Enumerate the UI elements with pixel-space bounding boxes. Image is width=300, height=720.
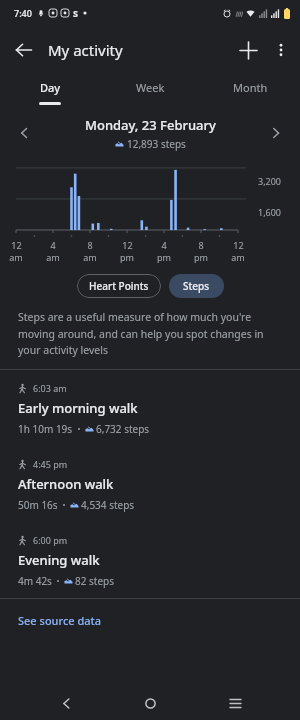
- button[interactable]: 6:03 am: [0, 370, 300, 446]
- staticText: am: [9, 251, 23, 263]
- staticText: Day: [40, 80, 61, 95]
- staticText: Week: [136, 80, 165, 95]
- button[interactable]: Previous day: [8, 117, 40, 149]
- button[interactable]: Steps: [169, 274, 224, 298]
- staticText: Month: [233, 80, 268, 95]
- staticText: 82 steps: [75, 574, 115, 588]
- staticText: 50m 16s: [18, 498, 58, 512]
- staticText: See source data: [18, 613, 102, 628]
- staticText: 12: [122, 239, 133, 251]
- staticText: 12,893 steps: [127, 137, 186, 151]
- staticText: Heart Points: [89, 279, 149, 293]
- staticText: 1,600: [258, 206, 282, 218]
- staticText: pm: [120, 251, 134, 263]
- button[interactable]: Day: [0, 74, 100, 110]
- button[interactable]: 6:00 pm: [0, 522, 300, 598]
- staticText: am: [231, 251, 245, 263]
- staticText: am: [83, 251, 97, 263]
- staticText: 8: [87, 239, 93, 251]
- staticText: 4m 42s: [18, 574, 52, 588]
- staticText: 4:45 pm: [33, 458, 68, 470]
- staticText: Steps are a useful measure of how much y…: [18, 310, 282, 357]
- staticText: Steps: [183, 279, 210, 293]
- staticText: 3,200: [258, 175, 282, 187]
- staticText: Evening walk: [18, 551, 100, 569]
- staticText: 4: [50, 239, 56, 251]
- staticText: 7:40: [14, 7, 32, 19]
- staticText: 6:00 pm: [33, 534, 68, 546]
- staticText: 4: [161, 239, 167, 251]
- staticText: Monday, 23 February: [85, 116, 216, 134]
- button[interactable]: 4:45 pm: [0, 446, 300, 522]
- staticText: 12: [11, 239, 22, 251]
- staticText: 1h 10m 19s: [18, 422, 73, 436]
- button[interactable]: Week: [100, 74, 200, 110]
- button[interactable]: Back: [6, 32, 42, 68]
- staticText: S: [73, 7, 78, 19]
- button[interactable]: More options: [266, 35, 296, 65]
- staticText: Early morning walk: [18, 399, 138, 417]
- button[interactable]: Month: [200, 74, 300, 110]
- staticText: 4,534 steps: [81, 498, 135, 512]
- button[interactable]: See source data: [0, 599, 300, 642]
- staticText: 6,732 steps: [96, 422, 150, 436]
- staticText: 8: [198, 239, 204, 251]
- button[interactable]: Heart Points: [77, 274, 161, 298]
- staticText: am: [46, 251, 60, 263]
- staticText: Afternoon walk: [18, 475, 114, 493]
- staticText: pm: [157, 251, 171, 263]
- staticText: 12: [233, 239, 244, 251]
- button[interactable]: Add: [230, 32, 266, 68]
- button[interactable]: Back: [47, 686, 85, 720]
- staticText: pm: [194, 251, 208, 263]
- button[interactable]: Recent apps: [216, 686, 254, 720]
- button[interactable]: Home: [131, 686, 169, 720]
- staticText: My activity: [48, 40, 123, 60]
- staticText: 6:03 am: [33, 382, 67, 394]
- button[interactable]: Next day: [260, 117, 292, 149]
